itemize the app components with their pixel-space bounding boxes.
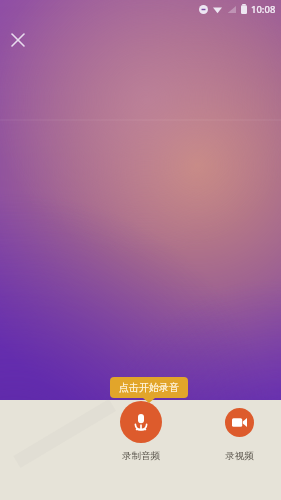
button[interactable]: Close bbox=[6, 28, 30, 52]
button[interactable]: 录制音频 bbox=[111, 401, 171, 462]
staticText: 录视频 bbox=[225, 450, 254, 462]
staticText: 10:08 bbox=[251, 3, 276, 16]
button[interactable]: 录视频 bbox=[214, 408, 264, 462]
button[interactable]: 点击开始录音 bbox=[110, 377, 188, 403]
staticText: 录制音频 bbox=[122, 450, 160, 462]
staticText: 点击开始录音 bbox=[119, 381, 179, 394]
